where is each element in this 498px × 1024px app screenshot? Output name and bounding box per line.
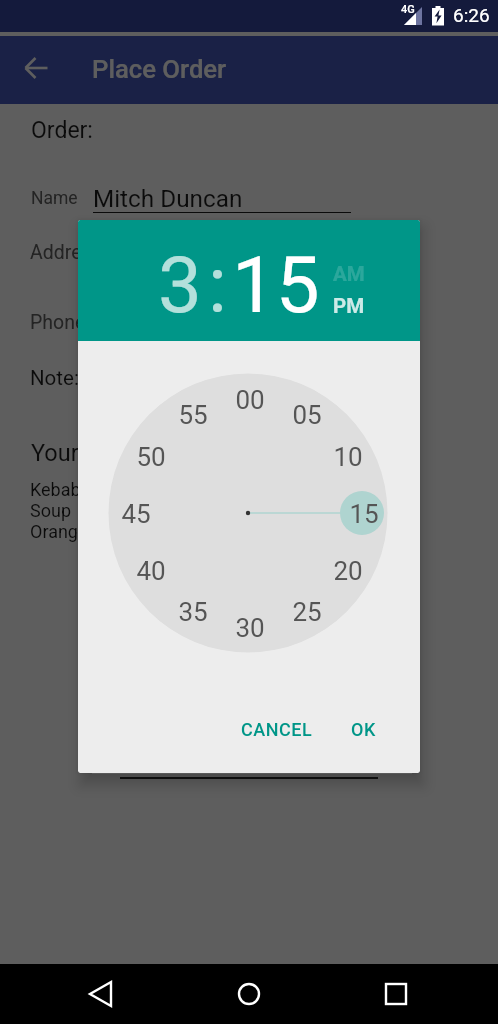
button[interactable]: 25 [283,594,331,630]
staticText: 6:26 [453,4,490,26]
staticText: Order: [31,117,93,144]
staticText: : [208,240,227,331]
staticText: PM [333,294,365,318]
button[interactable]: 55 [169,397,217,433]
button[interactable]: 15 [232,240,332,330]
staticText: 05 [292,400,322,430]
staticText: Soup [30,500,71,521]
button[interactable]: 3 [158,240,230,330]
staticText: Phone [30,311,86,334]
staticText: AM [333,262,365,286]
button[interactable]: Back [8,50,64,86]
staticText: 00 [235,385,265,415]
button[interactable]: 50 [127,439,175,475]
button[interactable]: 45 [112,496,160,532]
staticText: 15 [349,499,379,529]
button[interactable]: Back [72,974,130,1014]
staticText: Note: [30,366,79,390]
staticText: 4G [401,3,415,16]
staticText: Place Order [92,54,227,84]
button[interactable]: 20 [324,553,372,589]
staticText: 3 [158,240,202,330]
button[interactable]: 40 [127,553,175,589]
staticText: 15 [232,240,320,330]
button[interactable]: 15 [340,496,388,532]
staticText: Mitch Duncan [93,184,243,212]
staticText: Your order [31,439,140,467]
staticText: 40 [136,556,166,586]
staticText: CANCEL [241,719,313,740]
staticText: Kebab [30,479,81,500]
staticText: 10 [333,442,363,472]
staticText: 25 [292,597,322,627]
button[interactable]: OK [339,709,388,750]
button[interactable]: Recent apps [367,974,425,1014]
staticText: Address [30,241,102,264]
staticText: 50 [136,442,166,472]
button[interactable]: 05 [283,397,331,433]
staticText: 35 [178,597,208,627]
staticText: OK [351,719,376,740]
button[interactable]: Address [26,234,356,268]
button[interactable]: 30 [226,610,274,646]
staticText: 20 [333,556,363,586]
button[interactable]: Phone [26,304,356,338]
staticText: Name [31,188,78,209]
button[interactable]: 10 [324,439,372,475]
button[interactable]: 00 [226,382,274,418]
button[interactable]: Mitch Duncan [90,176,354,216]
staticText: 45 [121,499,151,529]
button[interactable]: 35 [169,594,217,630]
staticText: Orange juice [30,521,130,542]
staticText: 30 [235,613,265,643]
staticText: 55 [178,400,208,430]
button[interactable]: Home [220,974,278,1014]
button[interactable]: CANCEL [229,709,325,750]
